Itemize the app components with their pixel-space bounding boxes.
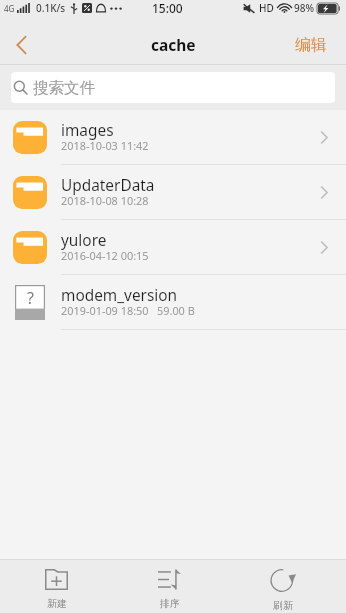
staticText: HD: [259, 1, 274, 15]
staticText: 搜索文件: [33, 78, 95, 98]
staticText: ?: [27, 287, 34, 309]
button[interactable]: 新建: [0, 560, 113, 613]
button[interactable]: images: [0, 110, 346, 165]
staticText: cache: [151, 34, 196, 55]
staticText: 排序: [160, 597, 180, 610]
staticText: images: [61, 120, 114, 141]
staticText: 2018-10-08 10:28: [61, 193, 149, 208]
staticText: 2019-01-09 18:50: [61, 303, 149, 318]
staticText: 15:00: [152, 0, 183, 16]
staticText: 刷新: [273, 599, 293, 612]
staticText: 2016-04-12 00:15: [61, 248, 149, 263]
button[interactable]: ?: [0, 275, 346, 330]
staticText: 4G: [4, 3, 15, 14]
button[interactable]: 编辑: [282, 24, 346, 65]
staticText: 0.1K/s: [36, 1, 66, 15]
staticText: 98%: [294, 1, 314, 15]
button[interactable]: 搜索文件: [11, 72, 335, 103]
button[interactable]: Back: [0, 24, 42, 65]
staticText: UpdaterData: [61, 175, 155, 196]
staticText: 编辑: [295, 35, 327, 55]
button[interactable]: 排序: [113, 560, 226, 613]
staticText: 59.00 B: [157, 303, 195, 318]
staticText: yulore: [61, 230, 107, 251]
staticText: 新建: [47, 597, 67, 610]
staticText: modem_version: [61, 285, 178, 306]
button[interactable]: yulore: [0, 220, 346, 275]
button[interactable]: UpdaterData: [0, 165, 346, 220]
button[interactable]: 刷新: [226, 560, 339, 613]
staticText: 2018-10-03 11:42: [61, 138, 149, 153]
